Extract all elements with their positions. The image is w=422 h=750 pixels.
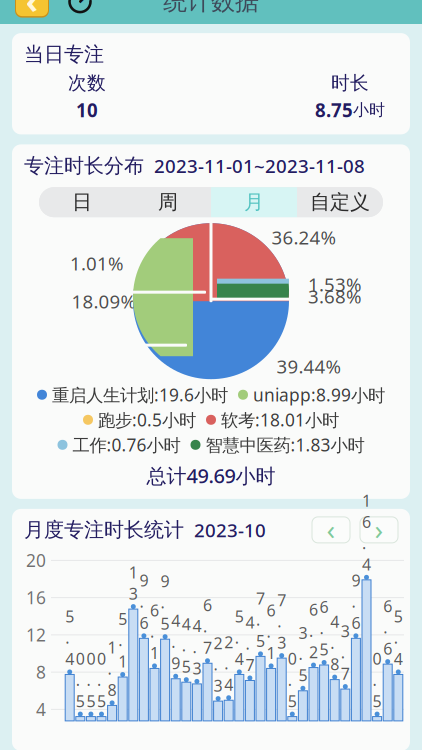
staticText: 3.5 bbox=[298, 622, 307, 686]
button[interactable]: Previous month bbox=[312, 517, 350, 543]
staticText: 0.5 bbox=[288, 648, 297, 711]
staticText: 9.6 bbox=[139, 570, 148, 633]
staticText: 9.6 bbox=[351, 570, 360, 633]
staticText: 8 bbox=[36, 661, 46, 684]
staticText: 1.01% bbox=[70, 251, 124, 276]
staticText: ‹ bbox=[25, 0, 38, 23]
staticText: 2.4 bbox=[224, 631, 233, 695]
staticText: 8.75 bbox=[315, 98, 353, 122]
button[interactable]: 月 bbox=[211, 187, 297, 217]
staticText: 10 bbox=[76, 98, 98, 122]
staticText: 1.8 bbox=[108, 637, 117, 700]
staticText: › bbox=[374, 510, 383, 547]
staticText: 专注时长分布 bbox=[24, 153, 144, 178]
staticText: 4.7 bbox=[245, 612, 254, 675]
staticText: 3.68% bbox=[308, 284, 362, 309]
staticText: 16.4 bbox=[362, 490, 371, 575]
staticText: 跑步:0.5小时 bbox=[98, 408, 196, 431]
staticText: 9.5 bbox=[161, 570, 170, 634]
staticText: uniapp:8.99小时 bbox=[253, 383, 385, 406]
staticText: 0.5 bbox=[373, 648, 382, 711]
staticText: 6.2 bbox=[309, 599, 318, 662]
staticText: 重启人生计划:19.6小时 bbox=[52, 383, 228, 406]
staticText: 总计49.69小时 bbox=[146, 462, 275, 489]
staticText: ↗ bbox=[75, 0, 94, 10]
staticText: 0.5 bbox=[76, 648, 85, 711]
staticText: 13 bbox=[129, 562, 138, 604]
staticText: 18.09% bbox=[71, 289, 136, 314]
staticText: 统计数据 bbox=[163, 0, 259, 16]
staticText: 39.44% bbox=[276, 354, 341, 379]
staticText: 小时 bbox=[353, 100, 385, 120]
staticText: 7.5 bbox=[256, 588, 265, 651]
staticText: 6.1 bbox=[150, 600, 159, 663]
staticText: 20 bbox=[26, 549, 46, 572]
staticText: 4.3 bbox=[192, 615, 201, 679]
staticText: 4.9 bbox=[171, 610, 180, 674]
staticText: 16 bbox=[26, 586, 46, 609]
staticText: 5.1 bbox=[118, 608, 127, 672]
button[interactable]: Back bbox=[14, 0, 50, 19]
staticText: 次数 bbox=[68, 72, 106, 95]
staticText: 1.53% bbox=[308, 272, 362, 297]
button[interactable]: Share bbox=[64, 0, 96, 18]
staticText: 0.5 bbox=[97, 648, 106, 711]
staticText: 工作:0.76小时 bbox=[72, 433, 180, 456]
button[interactable]: 日 bbox=[39, 187, 125, 217]
staticText: 4 bbox=[36, 698, 46, 721]
staticText: 月 bbox=[244, 190, 264, 214]
staticText: 月度专注时长统计 bbox=[24, 518, 184, 542]
staticText: 6.1 bbox=[267, 600, 276, 663]
staticText: 36.24% bbox=[271, 225, 336, 250]
staticText: ‹ bbox=[326, 510, 335, 547]
staticText: 5.4 bbox=[235, 606, 244, 669]
staticText: 6.5 bbox=[320, 596, 329, 660]
staticText: 2023-10 bbox=[194, 517, 266, 542]
staticText: 7.3 bbox=[277, 589, 286, 653]
staticText: 当日专注 bbox=[24, 42, 104, 67]
staticText: 软考:18.01小时 bbox=[221, 408, 339, 431]
staticText: 智慧中医药:1.83小时 bbox=[205, 433, 364, 456]
staticText: 周 bbox=[158, 190, 178, 214]
staticText: 自定义 bbox=[310, 190, 370, 214]
button[interactable]: Next month bbox=[360, 517, 398, 543]
staticText: 5.4 bbox=[394, 606, 403, 669]
staticText: 2023-11-01~2023-11-08 bbox=[154, 153, 365, 178]
staticText: 4.5 bbox=[182, 613, 191, 677]
staticText: 12 bbox=[26, 623, 46, 646]
staticText: 5.4 bbox=[65, 606, 74, 669]
button[interactable]: 周 bbox=[125, 187, 211, 217]
staticText: 时长 bbox=[331, 72, 369, 95]
staticText: 0.5 bbox=[86, 648, 95, 711]
button[interactable]: 自定义 bbox=[297, 187, 383, 217]
staticText: 6.6 bbox=[383, 595, 392, 659]
staticText: 日 bbox=[72, 190, 92, 214]
staticText: 3.7 bbox=[341, 620, 350, 684]
staticText: 2.3 bbox=[214, 632, 223, 696]
staticText: 6.7 bbox=[203, 594, 212, 658]
staticText: 4.8 bbox=[330, 611, 339, 675]
